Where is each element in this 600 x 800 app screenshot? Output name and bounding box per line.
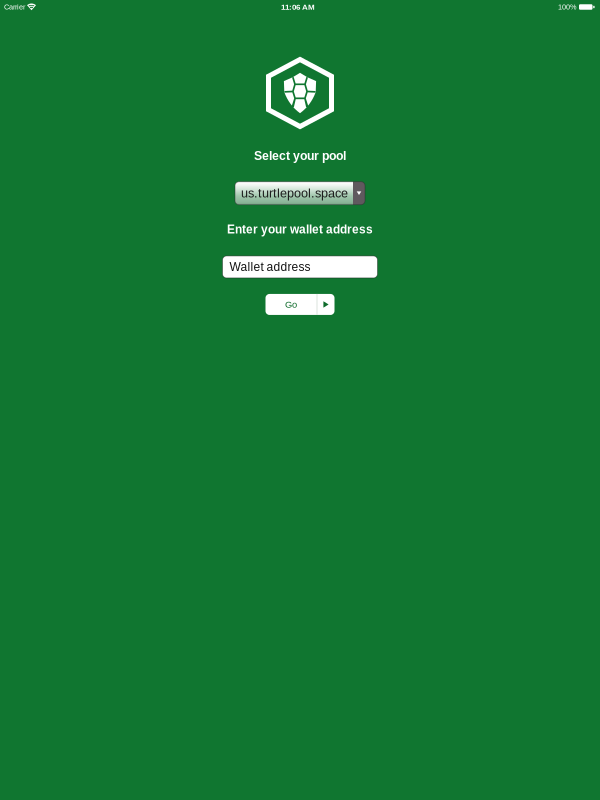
staticText: Enter your wallet address [227,223,373,236]
button[interactable]: Go [265,294,334,315]
staticText: Wallet address [229,260,310,274]
staticText: Carrier [4,3,25,11]
button[interactable]: us.turtlepool.space [235,182,365,205]
staticText: 11:06 AM [281,2,315,11]
staticText: Select your pool [254,149,346,163]
staticText: us.turtlepool.space [241,186,348,200]
staticText: Go [285,299,297,310]
button[interactable]: Wallet address [222,256,377,278]
staticText: 100% [558,3,577,11]
